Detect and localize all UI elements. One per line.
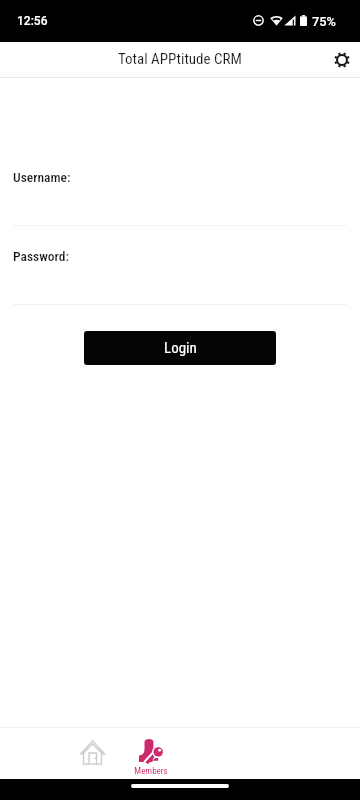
staticText: Total APPtitude CRM	[118, 50, 242, 68]
staticText: 12:56	[17, 14, 48, 28]
staticText: Members	[134, 766, 168, 777]
button[interactable]: Login	[84, 331, 276, 365]
button[interactable]: Settings	[327, 45, 357, 75]
button[interactable]: Members	[126, 728, 176, 779]
staticText: Username:	[13, 169, 71, 185]
staticText: 75%	[312, 14, 336, 29]
staticText: Login	[164, 339, 197, 357]
staticText: Password:	[13, 248, 69, 264]
button[interactable]: Home	[67, 728, 117, 779]
